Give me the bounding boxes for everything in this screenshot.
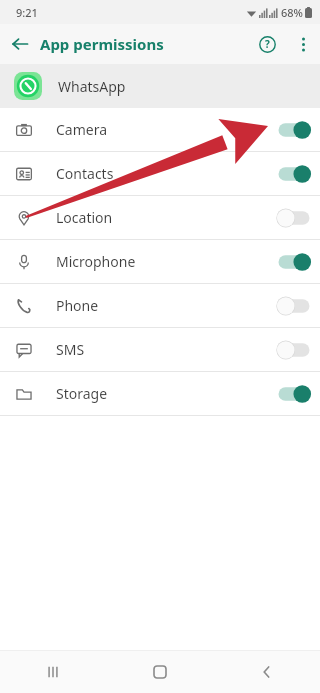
button[interactable]: Camera [0, 108, 320, 151]
staticText: Camera [56, 120, 108, 139]
button[interactable]: Location [0, 196, 320, 239]
button[interactable]: Back [213, 650, 320, 693]
staticText: Phone [56, 296, 99, 315]
button[interactable]: Toggle on [276, 163, 312, 185]
button[interactable]: WhatsApp [0, 64, 320, 108]
button[interactable]: Back [0, 24, 40, 64]
staticText: Microphone [56, 252, 136, 271]
button[interactable]: Toggle on [276, 251, 312, 273]
button[interactable]: Toggle off [276, 339, 312, 361]
staticText: Storage [56, 384, 108, 403]
staticText: 9:21 [16, 5, 38, 20]
staticText: WhatsApp [58, 77, 126, 96]
button[interactable]: Toggle off [276, 207, 312, 229]
button[interactable]: Phone [0, 284, 320, 327]
button[interactable]: Microphone [0, 240, 320, 283]
button[interactable]: Recents [0, 650, 106, 693]
button[interactable]: Help [248, 25, 286, 63]
button[interactable]: SMS [0, 328, 320, 371]
button[interactable]: Toggle on [276, 119, 312, 141]
button[interactable]: More options [286, 27, 320, 61]
button[interactable]: Storage [0, 372, 320, 415]
button[interactable]: Toggle on [276, 383, 312, 405]
staticText: 68% [281, 5, 303, 20]
button[interactable]: Home [106, 650, 213, 693]
staticText: SMS [56, 340, 85, 359]
staticText: Location [56, 208, 113, 227]
button[interactable]: Contacts [0, 152, 320, 195]
staticText: App permissions [40, 34, 164, 54]
staticText: Contacts [56, 164, 114, 183]
button[interactable]: Toggle off [276, 295, 312, 317]
staticText: ? [265, 37, 270, 51]
